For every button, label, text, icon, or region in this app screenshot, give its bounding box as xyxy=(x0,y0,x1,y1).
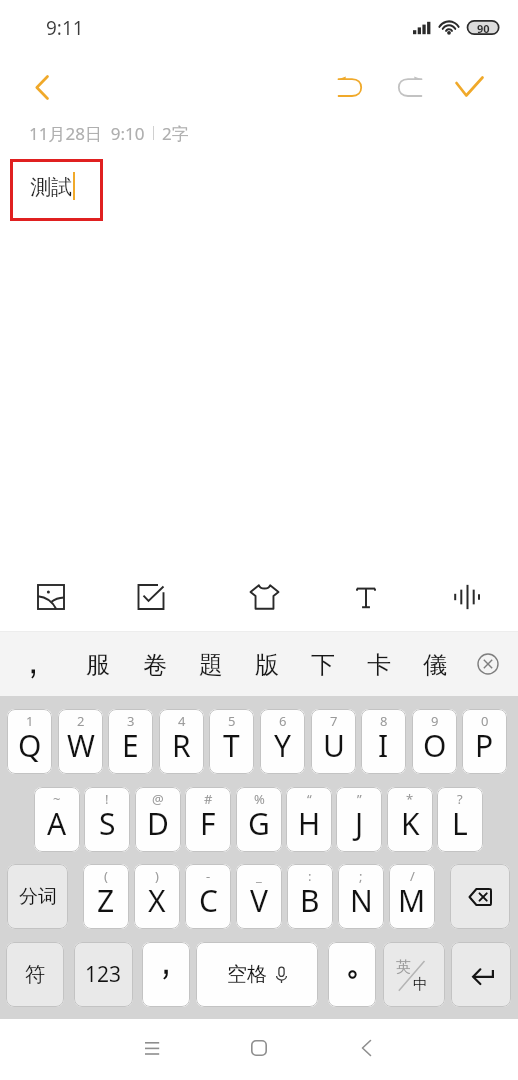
button[interactable]: Home xyxy=(221,1025,297,1071)
button[interactable]: Done xyxy=(445,63,493,111)
staticText: 版 xyxy=(255,650,279,680)
staticText: E xyxy=(122,725,139,766)
button[interactable]: ! xyxy=(84,787,130,852)
button[interactable]: 版 xyxy=(240,633,294,697)
staticText: 服 xyxy=(86,650,110,680)
button[interactable]: 空格 xyxy=(196,942,318,1007)
staticText: 卷 xyxy=(143,650,167,680)
button[interactable]: Checklist xyxy=(125,571,177,623)
button[interactable]: ~ xyxy=(34,787,80,852)
button[interactable]: 卡 xyxy=(352,633,406,697)
button[interactable]: 7 xyxy=(311,709,356,774)
staticText: “ xyxy=(307,790,312,808)
staticText: B xyxy=(300,880,320,921)
button[interactable]: / xyxy=(389,864,435,929)
button[interactable]: Clear xyxy=(466,632,510,696)
button[interactable] xyxy=(328,942,376,1007)
staticText: Y xyxy=(274,725,291,766)
button[interactable]: ) xyxy=(134,864,180,929)
button[interactable]: 9 xyxy=(412,709,457,774)
button[interactable]: 符 xyxy=(6,942,64,1007)
staticText: 卡 xyxy=(367,650,391,680)
staticText: 9 xyxy=(431,712,439,730)
staticText: P xyxy=(475,725,494,766)
button[interactable] xyxy=(7,632,59,696)
staticText: 6 xyxy=(279,712,287,730)
button[interactable]: : xyxy=(287,864,333,929)
button[interactable]: * xyxy=(387,787,433,852)
button[interactable]: Style xyxy=(239,571,291,623)
button[interactable]: 3 xyxy=(108,709,153,774)
staticText: 符 xyxy=(25,962,45,987)
button[interactable]: 題 xyxy=(184,633,238,697)
button[interactable]: Back xyxy=(18,63,66,111)
staticText: A xyxy=(47,803,67,844)
button[interactable]: 6 xyxy=(260,709,305,774)
staticText: @ xyxy=(152,790,164,808)
staticText: 5 xyxy=(228,712,236,730)
staticText: S xyxy=(99,803,116,844)
staticText: U xyxy=(323,725,345,766)
button[interactable]: 5 xyxy=(209,709,254,774)
button[interactable]: Voice input xyxy=(441,571,493,623)
button[interactable]: 123 xyxy=(74,942,133,1007)
button[interactable]: - xyxy=(185,864,231,929)
staticText: 123 xyxy=(85,960,122,989)
staticText: 下 xyxy=(311,650,335,680)
staticText: 3 xyxy=(127,712,135,730)
button[interactable]: Recent apps xyxy=(114,1025,190,1071)
staticText: G xyxy=(248,803,270,844)
button[interactable]: ” xyxy=(336,787,382,852)
button[interactable]: 1 xyxy=(7,709,52,774)
staticText: / xyxy=(410,867,415,885)
staticText: 題 xyxy=(199,650,223,680)
staticText: O xyxy=(423,725,447,766)
button[interactable]: % xyxy=(236,787,282,852)
button[interactable]: Backspace xyxy=(450,864,510,929)
staticText: 測試 xyxy=(30,174,72,200)
button[interactable]: Insert image xyxy=(25,571,77,623)
staticText: : xyxy=(308,867,312,885)
button[interactable]: Back xyxy=(329,1025,405,1071)
staticText: N xyxy=(350,880,373,921)
button[interactable]: 0 xyxy=(462,709,507,774)
staticText: ) xyxy=(155,867,159,885)
button[interactable]: 4 xyxy=(159,709,204,774)
staticText: Q xyxy=(18,725,42,766)
button[interactable]: Enter xyxy=(451,942,511,1007)
staticText: D xyxy=(147,803,169,844)
button[interactable]: @ xyxy=(135,787,181,852)
staticText: # xyxy=(204,790,213,808)
staticText: W xyxy=(67,725,95,766)
button[interactable]: 儀 xyxy=(408,633,462,697)
staticText: 8 xyxy=(380,712,388,730)
staticText: C xyxy=(199,880,218,921)
button[interactable]: “ xyxy=(286,787,332,852)
button[interactable]: Text format xyxy=(340,571,392,623)
button[interactable] xyxy=(142,942,190,1007)
button[interactable]: 8 xyxy=(361,709,406,774)
button[interactable]: ? xyxy=(437,787,483,852)
staticText: ? xyxy=(457,790,463,808)
button[interactable]: Undo xyxy=(326,63,374,111)
button[interactable]: Switch input language xyxy=(383,942,445,1007)
staticText: % xyxy=(254,790,265,808)
staticText: 90 xyxy=(477,21,490,34)
staticText: K xyxy=(401,803,420,844)
button[interactable]: 服 xyxy=(71,633,125,697)
button[interactable]: 分词 xyxy=(7,864,68,929)
button[interactable]: Redo xyxy=(386,63,434,111)
button[interactable]: # xyxy=(185,787,231,852)
button[interactable]: _ xyxy=(236,864,282,929)
staticText: 分词 xyxy=(19,885,57,909)
staticText: 儀 xyxy=(423,650,447,680)
staticText: 2字 xyxy=(162,122,189,144)
button[interactable]: ( xyxy=(83,864,129,929)
staticText: 4 xyxy=(178,712,186,730)
staticText: L xyxy=(452,803,468,844)
button[interactable]: 下 xyxy=(296,633,350,697)
staticText: J xyxy=(355,803,364,844)
button[interactable]: 2 xyxy=(58,709,103,774)
button[interactable]: 卷 xyxy=(128,633,182,697)
button[interactable]: ; xyxy=(338,864,384,929)
